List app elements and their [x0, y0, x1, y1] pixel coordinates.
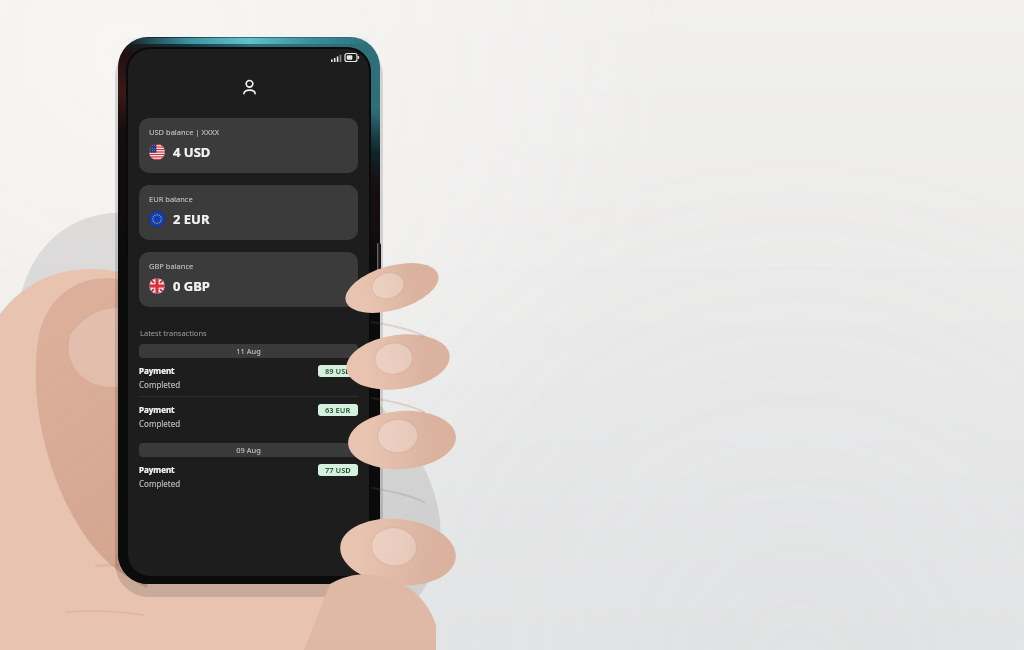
staticText: Payment: [139, 404, 175, 415]
staticText: USD balance | XXXX: [149, 127, 220, 137]
staticText: Payment: [139, 365, 175, 376]
button[interactable]: Payment: [139, 365, 358, 390]
button[interactable]: 09 Aug: [139, 443, 358, 457]
button[interactable]: USD balance | XXXX: [139, 118, 358, 173]
staticText: Payment: [139, 464, 175, 475]
button[interactable]: 11 Aug: [139, 344, 358, 358]
staticText: 11 Aug: [236, 346, 261, 356]
button[interactable]: Account: [234, 72, 264, 102]
staticText: 63 EUR: [325, 405, 351, 415]
button[interactable]: EUR balance: [139, 185, 358, 240]
button[interactable]: GBP balance: [139, 252, 358, 307]
staticText: 4 USD: [173, 143, 211, 161]
staticText: Latest transactions: [140, 328, 207, 338]
staticText: Completed: [139, 478, 181, 489]
staticText: 2 EUR: [173, 210, 210, 228]
staticText: Completed: [139, 418, 181, 429]
button[interactable]: Payment: [139, 404, 358, 429]
staticText: 09 Aug: [236, 445, 261, 455]
staticText: 77 USD: [325, 465, 351, 475]
staticText: 0 GBP: [173, 277, 210, 295]
staticText: EUR balance: [149, 194, 193, 204]
staticText: GBP balance: [149, 261, 194, 271]
button[interactable]: Payment: [139, 464, 358, 489]
staticText: Completed: [139, 379, 181, 390]
staticText: 89 USD: [325, 366, 351, 376]
